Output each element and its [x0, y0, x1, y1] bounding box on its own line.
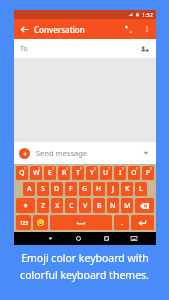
button[interactable]: To — [20, 39, 150, 58]
staticText: N — [110, 201, 116, 211]
button[interactable]: N — [107, 198, 119, 213]
staticText: H — [96, 184, 102, 194]
button[interactable] — [16, 198, 35, 213]
button[interactable]: Home — [64, 232, 92, 245]
button[interactable]: Back — [36, 232, 64, 245]
staticText: O — [131, 168, 137, 178]
staticText: G — [82, 184, 88, 194]
button[interactable]: 123 — [16, 215, 31, 230]
staticText: 7 — [108, 166, 111, 171]
button[interactable] — [135, 198, 154, 213]
button[interactable]: K — [121, 182, 133, 196]
staticText: B — [97, 201, 102, 211]
button[interactable]: Q — [16, 166, 28, 180]
staticText: S — [41, 184, 45, 194]
staticText: V — [83, 201, 88, 211]
button[interactable]: W — [30, 166, 42, 180]
staticText: 4 — [66, 166, 69, 171]
staticText: 0 — [150, 166, 153, 171]
staticText: colorful keyboard themes. — [20, 268, 149, 282]
button[interactable]: Recents — [92, 232, 120, 245]
staticText: I — [119, 168, 122, 178]
button[interactable]: U — [100, 166, 112, 180]
staticText: K — [125, 184, 130, 194]
staticText: 1:52 — [142, 11, 153, 18]
button[interactable]: Keyboard — [120, 232, 148, 245]
staticText: 6 — [94, 166, 97, 171]
staticText: Y — [90, 168, 95, 178]
button[interactable]: I — [114, 166, 126, 180]
staticText: 1 — [24, 166, 27, 171]
button[interactable]: E — [44, 166, 56, 180]
staticText: X — [55, 201, 60, 211]
button[interactable]: L — [135, 182, 147, 196]
staticText: D — [54, 184, 60, 194]
button[interactable]: Add attachment — [19, 148, 30, 159]
button[interactable]: More options — [138, 20, 156, 38]
staticText: 3 — [52, 166, 55, 171]
staticText: E — [48, 168, 52, 178]
staticText: P — [146, 168, 151, 178]
button[interactable]: F — [65, 182, 77, 196]
button[interactable]: M — [121, 198, 133, 213]
staticText: Emoji color keyboard with — [21, 251, 149, 265]
staticText: M — [124, 201, 131, 211]
staticText: W — [33, 168, 40, 178]
button[interactable]: J — [107, 182, 119, 196]
button[interactable]: Z — [37, 198, 49, 213]
button[interactable]: Send — [141, 148, 151, 158]
staticText: 2 — [38, 166, 41, 171]
button[interactable]: P — [142, 166, 154, 180]
staticText: C — [69, 201, 74, 211]
button[interactable] — [131, 215, 154, 230]
button[interactable]: D — [51, 182, 63, 196]
staticText: 9 — [136, 166, 139, 171]
button[interactable]: H — [93, 182, 105, 196]
staticText: 8 — [122, 166, 125, 171]
button[interactable]: R — [58, 166, 70, 180]
staticText: Send message — [36, 148, 88, 158]
button[interactable]: Call — [118, 19, 138, 39]
button[interactable]: Add contact — [138, 43, 150, 55]
staticText: J — [112, 184, 115, 194]
staticText: F — [69, 184, 73, 194]
button[interactable]: G — [79, 182, 91, 196]
button[interactable]: A — [23, 182, 35, 196]
staticText: Z — [41, 201, 46, 211]
staticText: Q — [19, 168, 25, 178]
button[interactable]: C — [65, 198, 77, 213]
staticText: 5 — [80, 166, 83, 171]
button[interactable]: . — [114, 215, 129, 230]
button[interactable] — [50, 215, 112, 230]
staticText: 123 — [20, 220, 28, 226]
button[interactable]: T — [72, 166, 84, 180]
button[interactable]: Y — [86, 166, 98, 180]
staticText: L — [139, 184, 143, 194]
button[interactable]: O — [128, 166, 140, 180]
button[interactable]: V — [79, 198, 91, 213]
staticText: T — [76, 168, 80, 178]
staticText: R — [62, 168, 67, 178]
staticText: A — [27, 184, 32, 194]
button[interactable] — [33, 215, 48, 230]
staticText: U — [103, 168, 109, 178]
button[interactable]: Back — [14, 19, 34, 39]
button[interactable]: B — [93, 198, 105, 213]
staticText: To — [20, 44, 28, 54]
button[interactable]: X — [51, 198, 63, 213]
staticText: . — [121, 218, 123, 228]
button[interactable]: S — [37, 182, 49, 196]
staticText: Conversation — [34, 24, 85, 35]
